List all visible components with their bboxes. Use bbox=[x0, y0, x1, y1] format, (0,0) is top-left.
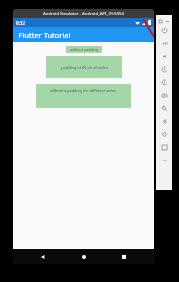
staticText: Android Emulator - Android_API_31:5554 bbox=[43, 11, 124, 17]
button[interactable]: Overview bbox=[156, 141, 172, 154]
button[interactable]: different padding for different sides. bbox=[36, 84, 131, 108]
staticText: different padding for different sides. bbox=[50, 88, 117, 93]
button[interactable]: More bbox=[156, 154, 172, 167]
button[interactable]: Volume down bbox=[156, 50, 172, 63]
button[interactable]: Zoom bbox=[156, 102, 172, 115]
button[interactable]: Recent apps bbox=[114, 250, 134, 264]
button[interactable]: Home bbox=[156, 128, 172, 141]
button[interactable]: Power bbox=[156, 24, 172, 37]
button[interactable]: Back bbox=[156, 115, 172, 128]
staticText: Flutter Tutorial bbox=[18, 30, 71, 40]
button[interactable]: Volume up bbox=[156, 37, 172, 50]
button[interactable]: without padding bbox=[66, 46, 102, 53]
staticText: 9:32 bbox=[16, 20, 25, 26]
staticText: padding of 40 on all sides bbox=[61, 65, 108, 70]
button[interactable]: Rotate left bbox=[156, 63, 172, 76]
button[interactable]: Screenshot bbox=[156, 89, 172, 102]
button[interactable]: Rotate right bbox=[156, 76, 172, 89]
button[interactable]: padding of 40 on all sides bbox=[46, 56, 122, 78]
staticText: without padding bbox=[70, 47, 98, 52]
button[interactable]: Back bbox=[33, 250, 53, 264]
button[interactable]: Home bbox=[74, 250, 94, 264]
